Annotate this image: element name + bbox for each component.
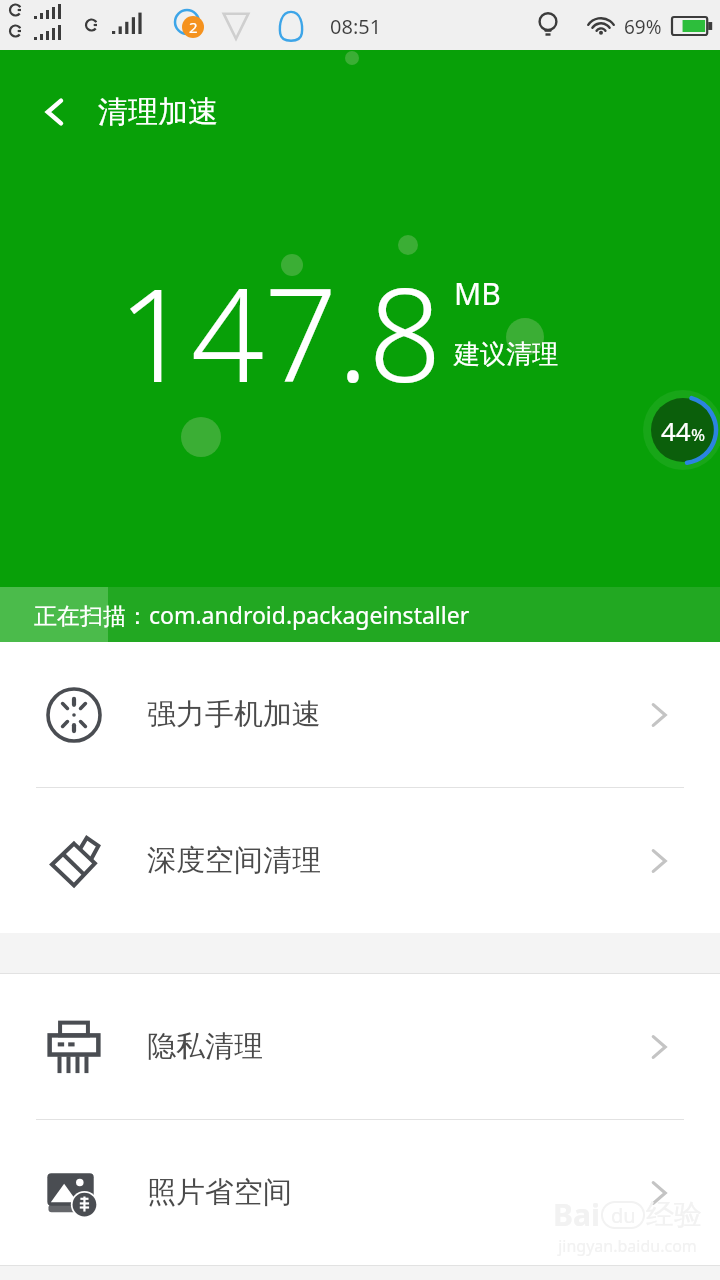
staticText: MB [454,273,501,314]
staticText: 正在扫描：com.android.packageinstaller [34,599,470,630]
button[interactable]: 内存占用 44% [643,390,720,470]
staticText: 经验 [646,1197,702,1232]
button[interactable]: 照片省空间 [0,1120,720,1265]
button[interactable]: 返回 [0,78,246,146]
staticText: 清理加速 [98,93,218,131]
staticText: 建议清理 [454,338,558,371]
staticText: 隐私清理 [147,1028,646,1065]
button[interactable]: 隐私清理 [0,974,720,1119]
staticText: 强力手机加速 [147,696,646,733]
staticText: 69% [624,14,662,40]
staticText: 44 [661,413,691,448]
staticText: Bai [553,1194,600,1235]
staticText: 2 [189,17,198,37]
button[interactable]: 深度空间清理 [0,788,720,933]
staticText: 08:51 [330,13,382,40]
staticText: % [691,423,706,446]
staticText: jingyan.baidu.com [558,1235,697,1257]
button[interactable]: 强力手机加速 [0,642,720,787]
staticText: 照片省空间 [147,1174,646,1211]
staticText: du [611,1202,636,1228]
staticText: 147.8 [118,245,442,419]
staticText: 深度空间清理 [147,842,646,879]
